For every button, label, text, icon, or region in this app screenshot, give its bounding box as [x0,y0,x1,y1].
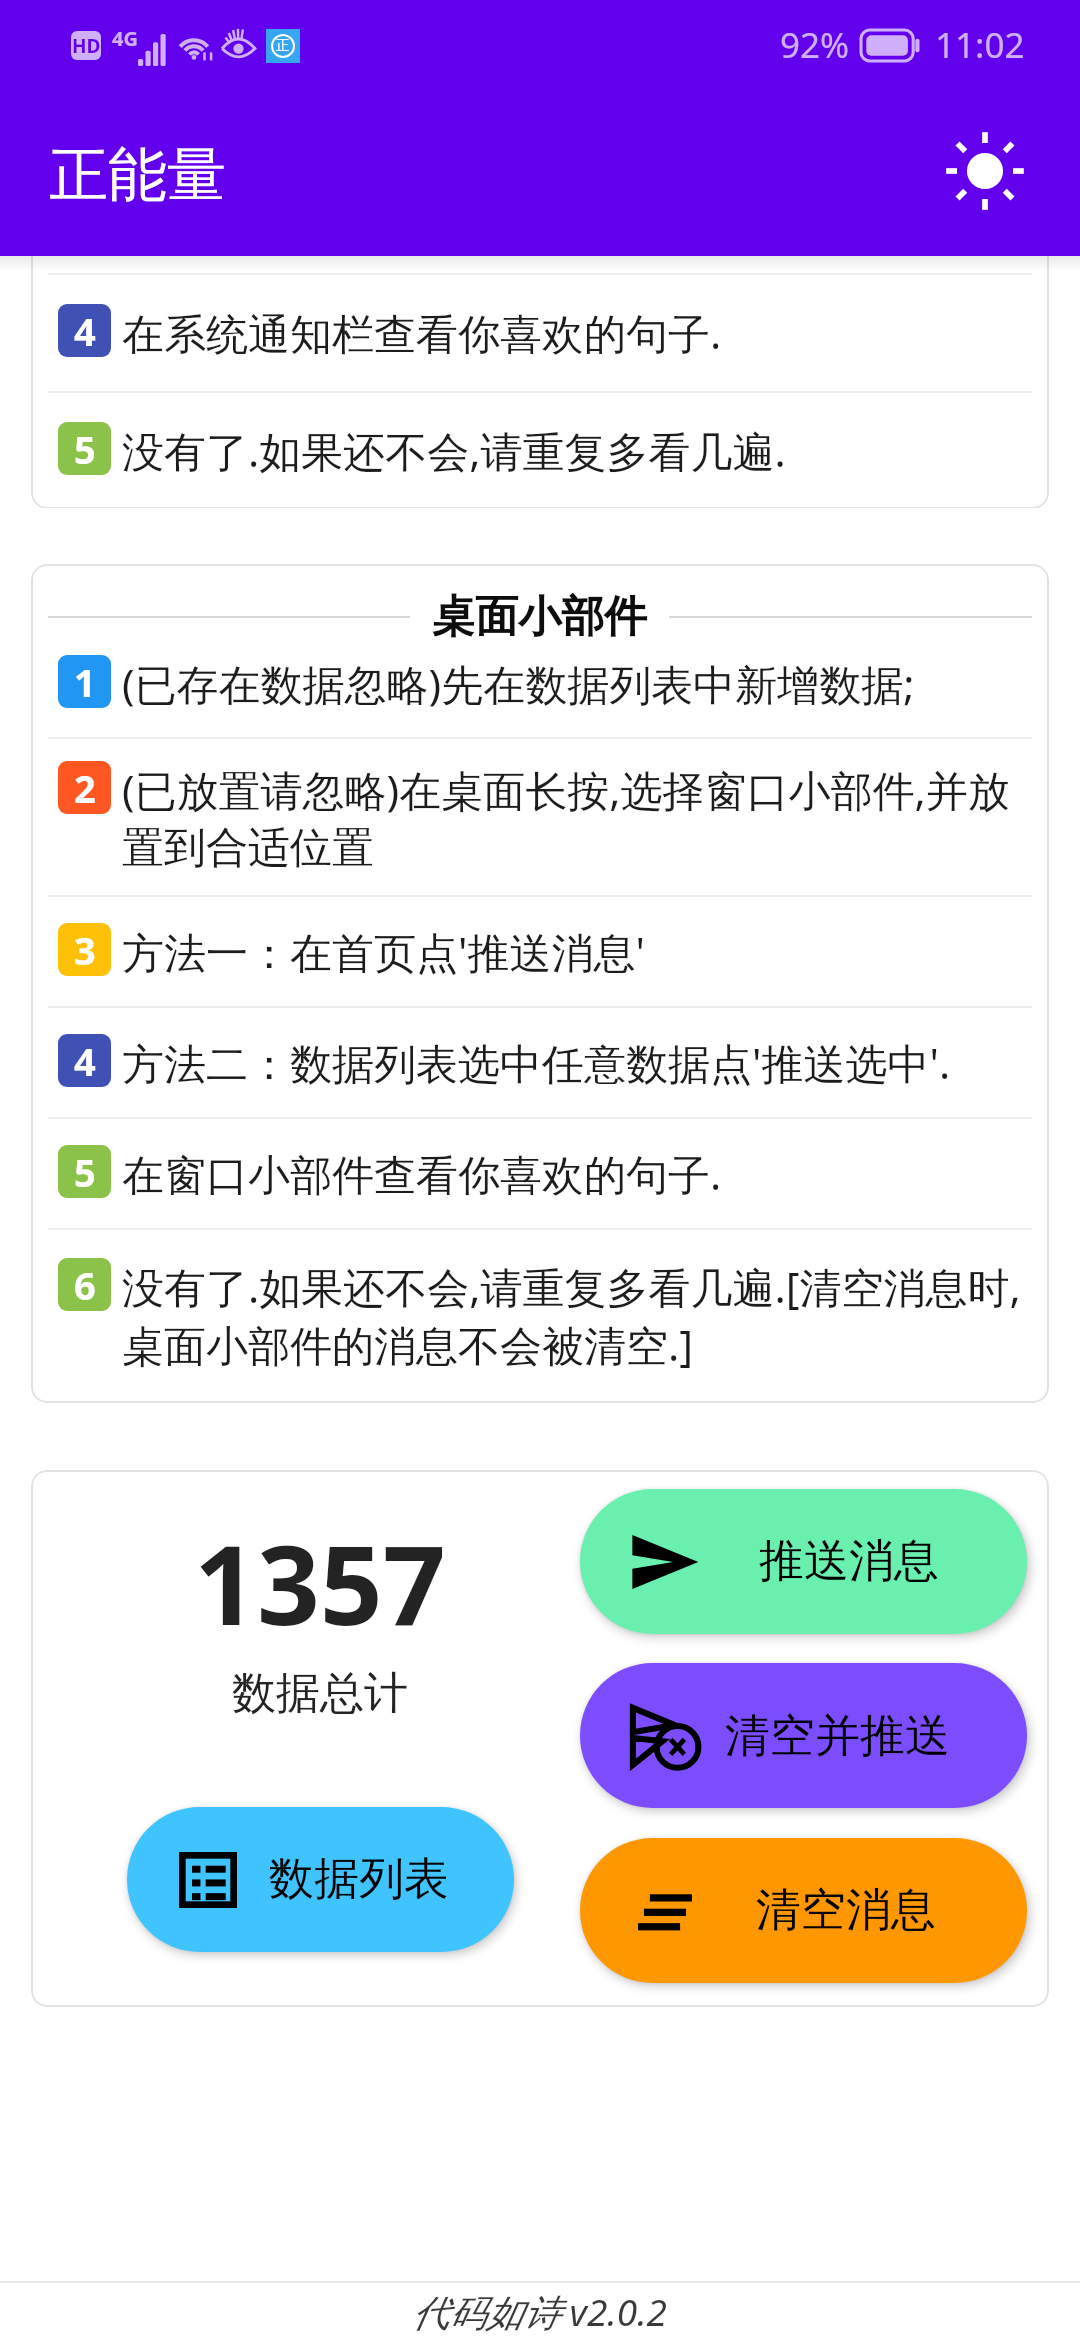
button[interactable]: 5 [31,1119,1049,1228]
button[interactable]: 3 [31,256,1049,273]
staticText: 数据总计 [232,1666,408,1721]
staticText: (已放置请忽略)在桌面长按,选择窗口小部件,并放置到合适位置 [122,761,1043,874]
staticText: 5 [74,1146,96,1198]
staticText: 1 [74,656,96,708]
staticText: 4 [74,305,96,357]
staticText: 数据列表 [269,1851,449,1908]
staticText: 桌面小部件 [432,590,647,644]
staticText: 没有了.如果还不会,请重复多看几遍.[清空消息时,桌面小部件的消息不会被清空.] [122,1258,1043,1373]
staticText: 在系统通知栏查看你喜欢的句子. [122,304,722,361]
staticText: HD [72,33,101,59]
button[interactable]: 5 [31,393,1049,508]
staticText: 5 [74,423,96,475]
staticText: 方法一：在首页点'推送消息' [122,923,645,980]
staticText: 11:02 [935,21,1025,69]
button[interactable]: 数据列表 [127,1807,514,1952]
staticText: 6 [74,1259,96,1311]
staticText: 在窗口小部件查看你喜欢的句子. [122,1145,722,1202]
staticText: 清空消息 [756,1882,936,1939]
staticText: 1357 [194,1507,446,1657]
button[interactable]: 2 [31,739,1049,895]
staticText: 代码如诗 v2.0.2 [412,2286,668,2337]
staticText: (已存在数据忽略)先在数据列表中新增数据; [122,655,915,712]
button[interactable]: 6 [31,1230,1049,1403]
button[interactable]: 1 [31,644,1049,737]
button[interactable]: Brightness [930,116,1040,226]
staticText: 正 [276,37,290,55]
staticText: 推送消息 [759,1533,939,1590]
staticText: 3 [74,924,96,976]
button[interactable]: 3 [31,897,1049,1006]
staticText: 2 [74,762,96,814]
button[interactable]: 推送消息 [580,1489,1027,1634]
button[interactable]: 4 [31,275,1049,391]
button[interactable]: 清空消息 [580,1838,1027,1983]
staticText: 92% [780,21,850,69]
staticText: 4 [74,1035,96,1087]
staticText: 方法二：数据列表选中任意数据点'推送选中'. [122,1034,951,1091]
staticText: 清空并推送 [725,1708,950,1765]
button[interactable]: 4 [31,1008,1049,1117]
staticText: 没有了.如果还不会,请重复多看几遍. [122,422,786,479]
staticText: 4G [112,25,138,52]
staticText: 正能量 [49,138,226,212]
button[interactable]: 清空并推送 [580,1663,1027,1808]
